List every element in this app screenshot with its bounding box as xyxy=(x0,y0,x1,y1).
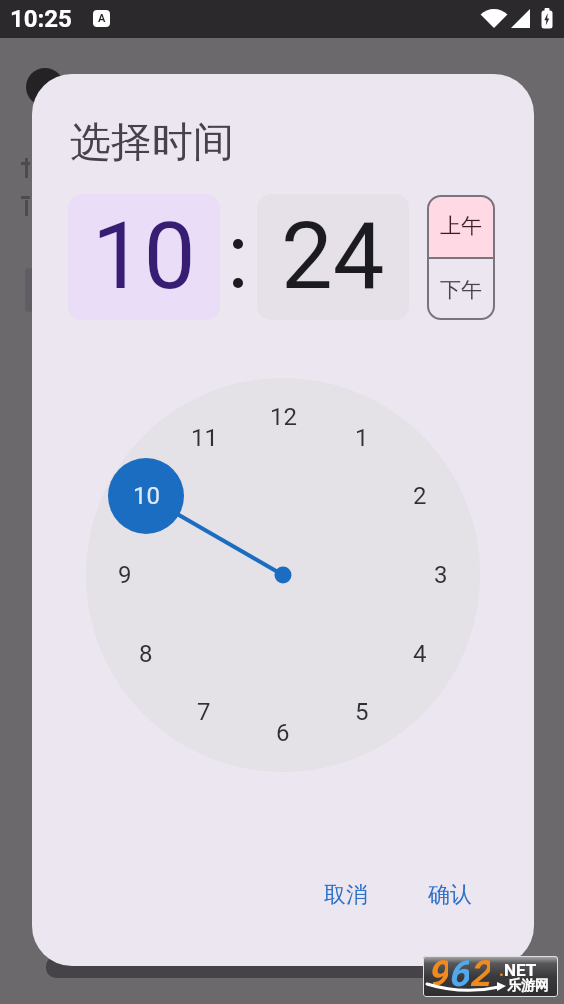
staticText: 10 xyxy=(133,482,160,510)
staticText: 10:25 xyxy=(10,5,72,33)
staticText: 确认 xyxy=(428,881,472,909)
staticText: 6 xyxy=(276,719,290,747)
staticText: 6 xyxy=(448,953,469,994)
staticText: 2 xyxy=(413,482,427,510)
staticText: 9 xyxy=(427,953,448,994)
staticText: 5 xyxy=(355,698,369,726)
staticText: A xyxy=(98,12,106,25)
staticText: 2 xyxy=(469,953,490,994)
staticText: 8 xyxy=(139,640,153,668)
button[interactable]: 下午 xyxy=(427,259,495,320)
staticText: 10 xyxy=(92,203,196,311)
staticText: 12 xyxy=(270,403,297,431)
staticText: 下午 xyxy=(440,277,482,303)
staticText: 9 xyxy=(118,561,132,589)
button[interactable]: 24 xyxy=(257,194,409,320)
staticText: 1 xyxy=(355,424,369,452)
staticText: 4 xyxy=(413,640,427,668)
staticText: 7 xyxy=(197,698,211,726)
staticText: 取消 xyxy=(324,881,368,909)
staticText: 24 xyxy=(281,203,385,311)
staticText: 3 xyxy=(434,561,448,589)
staticText: 11 xyxy=(191,424,218,452)
button[interactable]: 确认 xyxy=(402,871,498,919)
button[interactable]: 上午 xyxy=(427,195,495,257)
staticText: 上午 xyxy=(440,213,482,239)
staticText: . xyxy=(499,960,504,980)
staticText: NET xyxy=(504,960,537,980)
staticText: 选择时间 xyxy=(70,117,234,169)
staticText: 乐游网 xyxy=(507,977,549,995)
button[interactable]: 10 xyxy=(68,194,220,320)
button[interactable]: 取消 xyxy=(298,871,394,919)
